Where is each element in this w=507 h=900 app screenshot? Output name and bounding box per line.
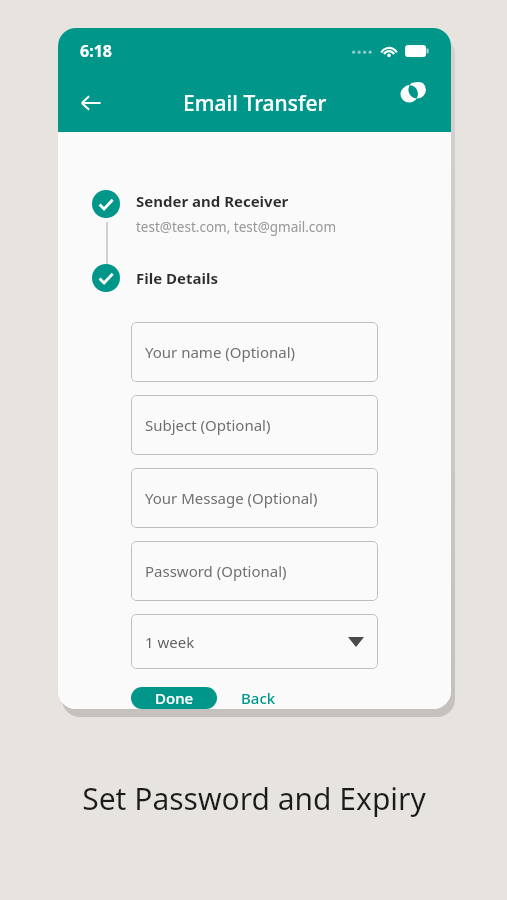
button[interactable]: Toggle dark mode [397, 82, 439, 124]
staticText: File Details [136, 268, 218, 288]
staticText: Your Message (Optional) [145, 488, 318, 508]
button[interactable]: Password (Optional) [131, 541, 378, 601]
button[interactable]: Sender and Receiver [58, 190, 451, 236]
button[interactable]: Back [68, 80, 114, 126]
button[interactable]: Your name (Optional) [131, 322, 378, 382]
staticText: Email Transfer [183, 89, 327, 118]
button[interactable]: Done [131, 687, 217, 709]
staticText: Done [155, 688, 194, 708]
staticText: Subject (Optional) [145, 415, 271, 435]
staticText: Your name (Optional) [145, 342, 296, 362]
staticText: test@test.com, test@gmail.com [136, 218, 337, 236]
button[interactable]: File Details [58, 264, 451, 292]
button[interactable]: Subject (Optional) [131, 395, 378, 455]
staticText: Sender and Receiver [136, 191, 289, 211]
button[interactable]: Your Message (Optional) [131, 468, 378, 528]
staticText: 6:18 [80, 40, 112, 62]
staticText: Set Password and Expiry [82, 778, 426, 819]
staticText: Password (Optional) [145, 561, 287, 581]
staticText: 1 week [145, 632, 195, 652]
staticText: Back [241, 688, 276, 708]
button[interactable]: Back [227, 687, 290, 709]
button[interactable]: 1 week [131, 614, 378, 669]
